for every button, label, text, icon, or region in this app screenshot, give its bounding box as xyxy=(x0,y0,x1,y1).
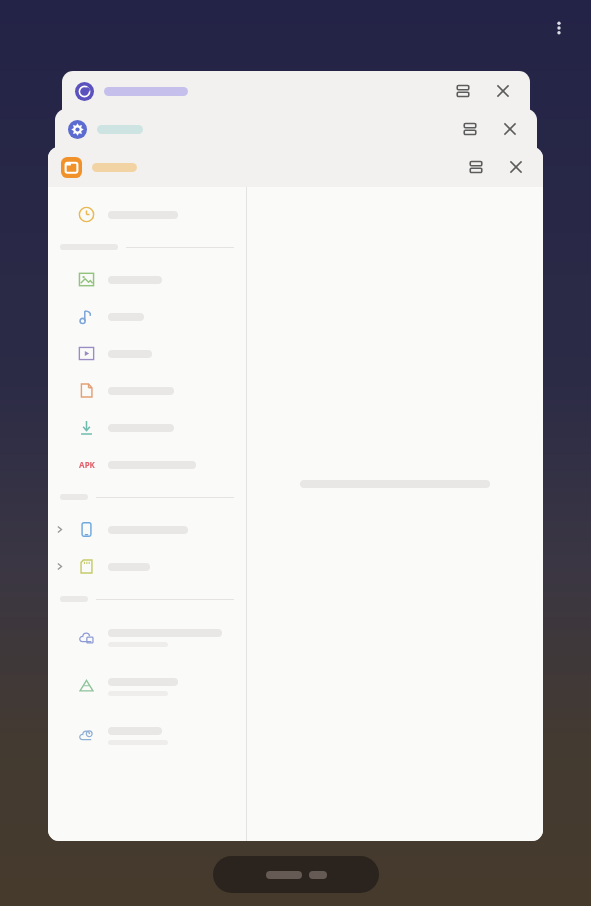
button[interactable] xyxy=(48,409,246,446)
button[interactable] xyxy=(48,372,246,409)
button[interactable] xyxy=(48,298,246,335)
button[interactable] xyxy=(48,261,246,298)
staticText: APK xyxy=(79,459,95,470)
button[interactable]: APK xyxy=(48,446,246,483)
button[interactable]: Close xyxy=(489,77,517,105)
button[interactable]: Split screen xyxy=(48,147,543,187)
button[interactable] xyxy=(213,856,379,893)
button[interactable] xyxy=(48,711,246,760)
button[interactable]: Close xyxy=(496,115,524,143)
button[interactable]: Split screen xyxy=(62,71,530,111)
button[interactable]: Split screen xyxy=(462,153,490,181)
button[interactable] xyxy=(48,662,246,711)
button[interactable]: Split screen xyxy=(449,77,477,105)
button[interactable]: More options xyxy=(539,8,579,48)
button[interactable] xyxy=(48,511,246,548)
button[interactable] xyxy=(48,196,246,233)
button[interactable] xyxy=(48,613,246,662)
button[interactable]: Split screen xyxy=(55,109,537,149)
button[interactable]: Split screen xyxy=(456,115,484,143)
button[interactable] xyxy=(48,548,246,585)
button[interactable] xyxy=(48,335,246,372)
button[interactable]: Close xyxy=(502,153,530,181)
